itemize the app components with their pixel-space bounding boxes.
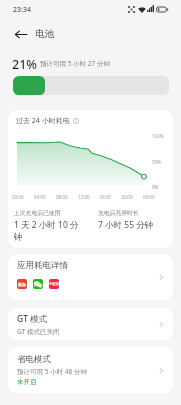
staticText: 省电模式: [17, 354, 51, 365]
button[interactable]: 省电模式: [8, 347, 173, 393]
staticText: 电池: [35, 28, 54, 40]
button[interactable]: GT 模式: [8, 308, 173, 340]
staticText: 闲鱼: [18, 282, 26, 287]
staticText: 预计可用 5 小时 48 分钟: [17, 367, 87, 376]
staticText: 00:00: [12, 194, 24, 200]
button[interactable]: 应用耗电详情: [8, 254, 173, 300]
staticText: 04:00: [34, 194, 46, 200]
staticText: 20:00: [121, 194, 133, 200]
staticText: 16:00: [99, 194, 111, 200]
staticText: 未开启: [17, 378, 37, 386]
staticText: 23:34: [13, 5, 31, 15]
staticText: 100%: [152, 133, 164, 139]
staticText: 过去 24 小时耗电: [16, 116, 70, 126]
staticText: 小红书: [49, 282, 59, 286]
staticText: 12:00: [78, 194, 90, 200]
staticText: 08:00: [56, 194, 68, 200]
staticText: 00:00: [143, 194, 155, 200]
staticText: 充电后亮屏时长: [98, 209, 139, 216]
staticText: GT 模式: [17, 313, 48, 325]
staticText: 21%: [12, 56, 37, 73]
staticText: GT 模式已关闭: [17, 327, 60, 336]
staticText: 预计可用 5 小时 27 分钟: [40, 59, 110, 68]
staticText: 1 天 2 小时 10 分钟: [14, 219, 84, 242]
staticText: 0%: [152, 184, 159, 190]
staticText: 7 小时 55 分钟: [98, 219, 154, 231]
staticText: 应用耗电详情: [17, 260, 68, 271]
staticText: 上次充电后已使用: [14, 209, 61, 216]
staticText: 50%: [152, 159, 161, 165]
button[interactable]: Back: [11, 24, 31, 44]
